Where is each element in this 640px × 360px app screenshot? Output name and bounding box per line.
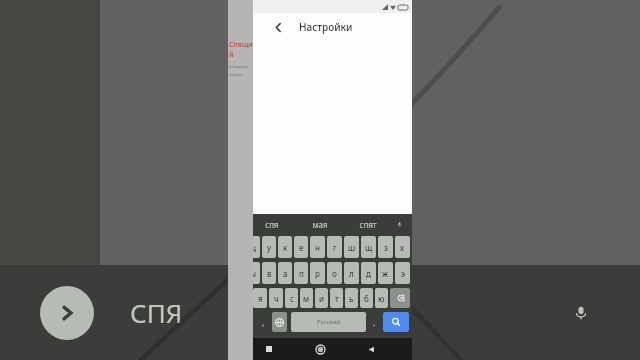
staticText: экрана <box>229 72 243 77</box>
button[interactable]: м <box>300 288 313 308</box>
staticText: и <box>319 293 324 304</box>
button[interactable]: Home <box>310 339 330 359</box>
staticText: ь <box>349 293 354 304</box>
staticText: . <box>373 317 376 328</box>
staticText: щ <box>365 242 373 253</box>
button[interactable]: мая <box>296 214 344 234</box>
button[interactable]: Recents <box>259 339 279 359</box>
button[interactable]: е <box>294 236 308 258</box>
staticText: п <box>299 268 304 279</box>
button[interactable]: Voice input <box>392 217 406 231</box>
staticText: с <box>290 293 294 304</box>
button[interactable]: Voice input <box>558 290 604 336</box>
button[interactable]: и <box>315 288 328 308</box>
button[interactable]: ю <box>375 288 388 308</box>
staticText: я <box>258 293 263 304</box>
staticText: Настройки <box>299 20 353 34</box>
button[interactable]: х <box>395 236 410 258</box>
button[interactable]: в <box>262 262 276 284</box>
button[interactable]: щ <box>361 236 376 258</box>
button[interactable]: Change language <box>272 312 287 332</box>
staticText: е <box>299 242 304 253</box>
staticText: р <box>315 268 320 279</box>
button[interactable]: у <box>262 236 276 258</box>
button[interactable]: т <box>330 288 343 308</box>
staticText: ы <box>250 268 257 279</box>
button[interactable]: р <box>310 262 325 284</box>
button[interactable]: о <box>327 262 342 284</box>
button[interactable]: . <box>368 310 381 334</box>
staticText: м <box>303 293 310 304</box>
staticText: спят <box>359 219 377 230</box>
button[interactable]: Back <box>268 17 288 37</box>
button[interactable]: спя <box>248 214 296 234</box>
staticText: к <box>283 242 288 253</box>
button[interactable]: Expand suggestions <box>40 286 94 340</box>
button[interactable]: а <box>278 262 292 284</box>
staticText: Спящий <box>229 40 253 60</box>
button[interactable]: ж <box>378 262 393 284</box>
button[interactable]: ц <box>246 236 260 258</box>
staticText: т <box>335 293 339 304</box>
staticText: ю <box>378 293 385 304</box>
staticText: з <box>384 242 388 253</box>
staticText: ч <box>274 293 279 304</box>
button[interactable]: , <box>257 310 270 334</box>
staticText: пожарова <box>229 64 249 69</box>
staticText: в <box>267 268 272 279</box>
button[interactable]: спят <box>344 214 392 234</box>
button[interactable]: я <box>253 288 267 308</box>
button[interactable]: СПЯТ <box>337 295 404 330</box>
staticText: спя <box>265 219 279 230</box>
staticText: мая <box>312 219 328 230</box>
staticText: б <box>364 293 369 304</box>
staticText: х <box>400 242 405 253</box>
staticText: а <box>283 268 288 279</box>
button[interactable]: ч <box>269 288 283 308</box>
staticText: о <box>332 268 337 279</box>
button[interactable]: Back <box>361 339 381 359</box>
button[interactable]: г <box>327 236 342 258</box>
button[interactable]: ?123 <box>230 311 256 333</box>
button[interactable]: Русский <box>291 312 366 332</box>
button[interactable]: п <box>294 262 308 284</box>
staticText: н <box>315 242 320 253</box>
staticText: г <box>333 242 337 253</box>
button[interactable]: с <box>285 288 298 308</box>
button[interactable]: СПЯ <box>130 295 183 330</box>
button[interactable]: э <box>395 262 410 284</box>
staticText: , <box>262 317 265 328</box>
button[interactable]: л <box>344 262 359 284</box>
button[interactable]: Search <box>383 312 409 332</box>
button[interactable]: Backspace <box>390 288 410 308</box>
staticText: ж <box>382 268 389 279</box>
staticText: д <box>366 268 371 279</box>
button[interactable]: д <box>361 262 376 284</box>
button[interactable]: б <box>360 288 373 308</box>
button[interactable]: ь <box>345 288 358 308</box>
button[interactable]: ы <box>246 262 260 284</box>
staticText: Русский <box>317 318 340 326</box>
button[interactable]: к <box>278 236 292 258</box>
staticText: э <box>401 268 405 279</box>
staticText: у <box>267 242 272 253</box>
staticText: л <box>349 268 354 279</box>
button[interactable]: н <box>310 236 325 258</box>
staticText: ц <box>251 242 256 253</box>
button[interactable]: з <box>378 236 393 258</box>
staticText: ш <box>348 242 356 253</box>
button[interactable]: ш <box>344 236 359 258</box>
